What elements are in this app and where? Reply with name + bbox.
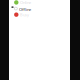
button[interactable]: Offline <box>9 5 70 12</box>
staticText: Offline <box>19 7 31 12</box>
staticText: Busy <box>20 12 29 17</box>
button[interactable]: Busy <box>9 12 70 18</box>
staticText: Online <box>20 0 31 5</box>
button[interactable]: Online <box>9 0 70 5</box>
